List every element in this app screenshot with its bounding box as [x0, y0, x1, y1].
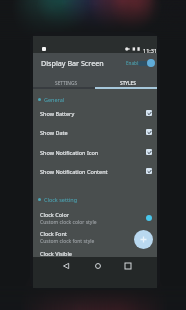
- button[interactable]: Clock Visible: [33, 247, 157, 267]
- staticText: General: [44, 96, 65, 103]
- staticText: Clock Color: [40, 211, 70, 218]
- staticText: Clock setting: [44, 196, 78, 203]
- button[interactable]: Add: [134, 230, 153, 249]
- button[interactable]: STYLES: [95, 72, 157, 89]
- staticText: Custom clock color style: [40, 219, 97, 226]
- button[interactable]: Show Battery: [33, 103, 157, 123]
- staticText: Show Notification Content: [40, 168, 108, 175]
- staticText: STYLES: [120, 80, 136, 87]
- button[interactable]: Clock Color: [33, 208, 157, 228]
- staticText: Custom clock font style: [40, 238, 95, 245]
- staticText: Display Bar Screen: [41, 58, 104, 68]
- staticText: Show Battery: [40, 110, 75, 117]
- staticText: Clock Visible: [40, 250, 72, 257]
- button[interactable]: Show Date: [33, 122, 157, 142]
- staticText: 11:31: [143, 47, 158, 54]
- button[interactable]: SETTINGS: [33, 72, 95, 89]
- button[interactable]: Clock Font: [33, 227, 157, 247]
- button[interactable]: Enable: [125, 55, 155, 70]
- staticText: Custom clock visibility: [40, 258, 92, 265]
- staticText: Enable: [126, 60, 141, 66]
- button[interactable]: Home: [90, 258, 105, 273]
- staticText: SETTINGS: [55, 80, 78, 87]
- button[interactable]: Show Notification Icon: [33, 142, 157, 162]
- button[interactable]: Show Notification Content: [33, 161, 157, 181]
- staticText: Clock Font: [40, 230, 67, 237]
- staticText: Show Date: [40, 129, 68, 136]
- staticText: Show Notification Icon: [40, 149, 99, 156]
- button[interactable]: Back: [58, 258, 73, 273]
- button[interactable]: Recents: [120, 258, 135, 273]
